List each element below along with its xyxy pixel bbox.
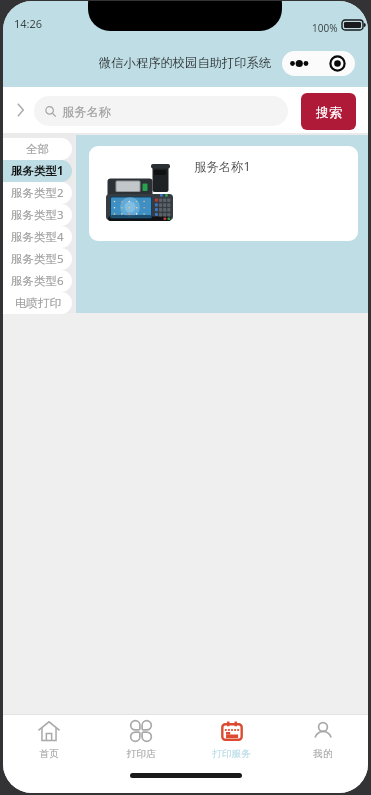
button[interactable]: 打印店 — [95, 715, 186, 759]
staticText: 首页 — [39, 748, 59, 759]
staticText: 服务类型6 — [11, 273, 64, 289]
button[interactable]: More options — [282, 51, 319, 76]
button[interactable]: 服务类型4 — [3, 226, 72, 248]
staticText: 服务名称1 — [194, 158, 251, 175]
staticText: 服务类型4 — [11, 229, 64, 245]
staticText: 服务类型3 — [11, 207, 64, 223]
staticText: 100% — [312, 21, 338, 35]
button[interactable]: 服务名称1 — [89, 146, 358, 241]
button[interactable]: 打印服务 — [186, 715, 277, 759]
button[interactable]: 服务类型1 — [3, 160, 72, 182]
staticText: 全部 — [26, 142, 49, 156]
staticText: 打印店 — [126, 748, 156, 759]
staticText: 微信小程序的校园自助打印系统 — [99, 55, 272, 70]
button[interactable]: Close mini program — [319, 51, 355, 76]
button[interactable]: 服务类型5 — [3, 248, 72, 270]
button[interactable]: 首页 — [3, 715, 95, 759]
button[interactable]: 服务类型3 — [3, 204, 72, 226]
button[interactable]: Back — [8, 95, 32, 125]
staticText: 14:26 — [14, 16, 43, 31]
button[interactable]: 服务类型6 — [3, 270, 72, 292]
staticText: 服务类型5 — [11, 251, 64, 267]
staticText: 我的 — [313, 748, 333, 759]
staticText: 电喷打印 — [15, 296, 61, 310]
staticText: 搜索 — [316, 104, 342, 120]
button[interactable]: 全部 — [3, 138, 72, 160]
staticText: 打印服务 — [212, 748, 251, 759]
staticText: 服务类型1 — [11, 163, 64, 179]
button[interactable]: 服务名称 — [34, 96, 288, 126]
button[interactable]: 服务类型2 — [3, 182, 72, 204]
button[interactable]: 电喷打印 — [3, 292, 72, 314]
button[interactable]: 搜索 — [301, 93, 356, 130]
staticText: 服务名称 — [62, 104, 112, 119]
staticText: 服务类型2 — [11, 185, 64, 201]
button[interactable]: 我的 — [277, 715, 368, 759]
